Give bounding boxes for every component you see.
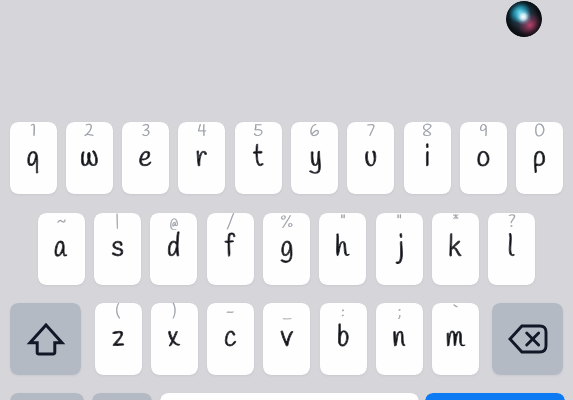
button[interactable]: Space: [160, 393, 419, 400]
button[interactable]: l: [488, 213, 535, 285]
button[interactable]: p: [516, 122, 563, 194]
button[interactable]: g: [263, 213, 310, 285]
button[interactable]: b: [320, 303, 367, 375]
button[interactable]: w: [66, 122, 113, 194]
button[interactable]: Enter: [425, 393, 565, 400]
button[interactable]: d: [150, 213, 197, 285]
button[interactable]: t: [235, 122, 282, 194]
button[interactable]: Backspace: [492, 303, 563, 375]
button[interactable]: Symbols: [10, 393, 84, 400]
button[interactable]: i: [404, 122, 451, 194]
button[interactable]: f: [207, 213, 254, 285]
button[interactable]: k: [432, 213, 479, 285]
button[interactable]: e: [122, 122, 169, 194]
button[interactable]: Shift: [10, 303, 81, 375]
button[interactable]: j: [376, 213, 423, 285]
button[interactable]: y: [291, 122, 338, 194]
button[interactable]: n: [376, 303, 423, 375]
button[interactable]: x: [151, 303, 198, 375]
button[interactable]: q: [10, 122, 57, 194]
button[interactable]: z: [95, 303, 142, 375]
button[interactable]: o: [460, 122, 507, 194]
button[interactable]: u: [347, 122, 394, 194]
button[interactable]: Emoji: [92, 393, 152, 400]
button[interactable]: s: [94, 213, 141, 285]
button[interactable]: c: [207, 303, 254, 375]
button[interactable]: a: [38, 213, 85, 285]
button[interactable]: v: [263, 303, 310, 375]
button[interactable]: Voice assistant: [506, 1, 542, 37]
button[interactable]: h: [319, 213, 366, 285]
button[interactable]: m: [432, 303, 479, 375]
button[interactable]: r: [178, 122, 225, 194]
